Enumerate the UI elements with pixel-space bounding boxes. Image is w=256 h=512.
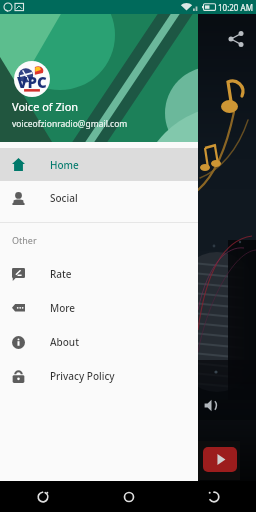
staticText: Voice of Zion [12, 99, 79, 114]
button[interactable]: More [0, 291, 198, 325]
button[interactable]: Privacy Policy [0, 359, 198, 393]
button[interactable]: Home [86, 481, 171, 512]
button[interactable]: About [0, 325, 198, 359]
staticText: Other [12, 234, 37, 246]
staticText: Home [50, 158, 79, 172]
button[interactable]: Home [0, 148, 198, 181]
button[interactable]: Play [203, 447, 237, 472]
staticText: 10:20 AM [218, 2, 253, 13]
staticText: Privacy Policy [50, 369, 115, 383]
staticText: voiceofzionradio@gmail.com [12, 118, 128, 130]
staticText: About [50, 335, 79, 349]
button[interactable]: Recents [171, 481, 256, 512]
staticText: Social [50, 191, 78, 205]
button[interactable]: Share [227, 30, 245, 48]
button[interactable]: Rate [0, 257, 198, 291]
button[interactable]: Volume [204, 398, 219, 413]
button[interactable]: Back [0, 481, 86, 512]
staticText: VPC [17, 72, 47, 92]
staticText: Rate [50, 267, 72, 281]
staticText: More [50, 301, 76, 315]
button[interactable]: Social [0, 181, 198, 215]
